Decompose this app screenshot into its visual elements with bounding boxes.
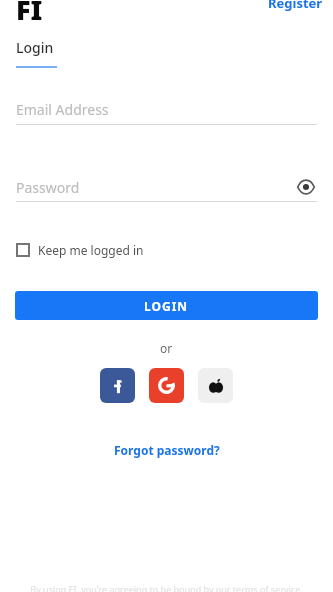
button[interactable]: Show password: [295, 176, 317, 198]
staticText: or: [160, 340, 173, 356]
button[interactable]: Keep me logged in: [16, 242, 148, 258]
staticText: FI: [16, 0, 43, 28]
button[interactable]: Email Address: [16, 100, 317, 125]
button[interactable]: Login: [16, 38, 54, 57]
button[interactable]: Forgot password?: [108, 440, 226, 460]
button[interactable]: Sign in with Google: [149, 368, 184, 403]
staticText: By using FI, you're agreeing to be bound…: [22, 583, 311, 592]
button[interactable]: Register: [266, 0, 325, 14]
button[interactable]: Password: [16, 176, 317, 202]
staticText: Register: [268, 0, 323, 12]
button[interactable]: Sign in with Facebook: [100, 368, 135, 403]
staticText: Forgot password?: [114, 442, 220, 458]
staticText: Keep me logged in: [38, 242, 144, 258]
staticText: Email Address: [16, 100, 109, 119]
button[interactable]: Sign in with Apple: [198, 368, 233, 403]
staticText: LOGIN: [144, 298, 189, 314]
staticText: Password: [16, 178, 295, 197]
button[interactable]: LOGIN: [15, 291, 318, 320]
staticText: Login: [16, 38, 54, 57]
